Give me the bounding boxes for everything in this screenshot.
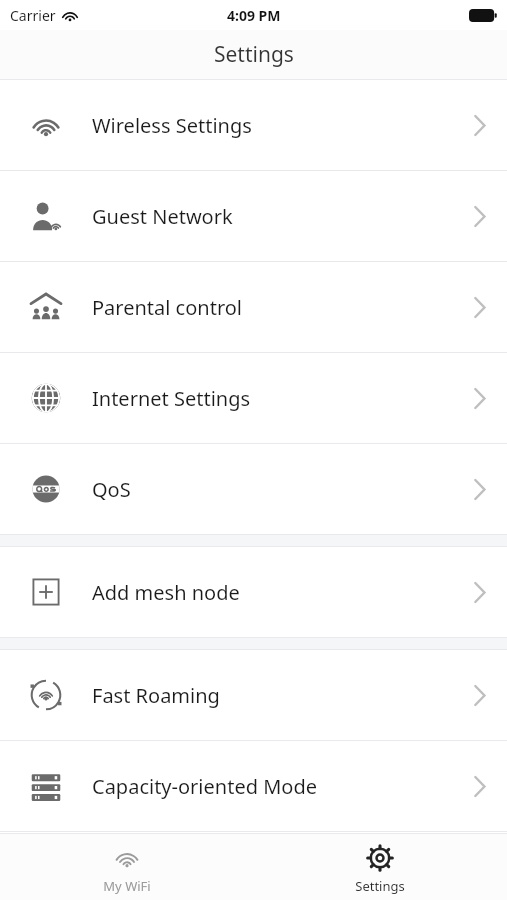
- staticText: Guest Network: [92, 203, 451, 230]
- staticText: Add mesh node: [92, 579, 451, 606]
- button[interactable]: Settings: [253, 834, 507, 900]
- button[interactable]: Capacity-oriented Mode: [0, 741, 507, 831]
- button[interactable]: Guest Network: [0, 171, 507, 261]
- staticText: Capacity-oriented Mode: [92, 773, 451, 800]
- button[interactable]: Wireless Settings: [0, 80, 507, 170]
- staticText: Settings: [214, 40, 294, 69]
- staticText: Settings: [355, 877, 405, 895]
- staticText: My WiFi: [103, 877, 151, 895]
- staticText: Parental control: [92, 294, 451, 321]
- button[interactable]: Internet Settings: [0, 353, 507, 443]
- button[interactable]: My WiFi: [0, 834, 253, 900]
- button[interactable]: Add mesh node: [0, 547, 507, 637]
- staticText: QoS: [92, 476, 451, 503]
- button[interactable]: QoS: [0, 444, 507, 534]
- button[interactable]: Parental control: [0, 262, 507, 352]
- staticText: Wireless Settings: [92, 112, 451, 139]
- staticText: Internet Settings: [92, 385, 451, 412]
- staticText: Fast Roaming: [92, 682, 451, 709]
- staticText: Carrier: [10, 6, 56, 25]
- staticText: 4:09 PM: [227, 6, 281, 25]
- button[interactable]: Fast Roaming: [0, 650, 507, 740]
